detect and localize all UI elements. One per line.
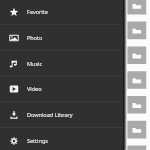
button[interactable]: Download Library: [0, 102, 123, 128]
button[interactable]: Photo: [0, 25, 123, 51]
button[interactable]: Music: [0, 51, 123, 77]
staticText: Settings: [27, 137, 48, 144]
button[interactable]: Video: [0, 76, 123, 102]
staticText: Music: [27, 60, 43, 67]
staticText: Favorite: [27, 8, 48, 15]
staticText: Download Library: [27, 111, 73, 118]
staticText: Video: [27, 85, 42, 92]
button[interactable]: Favorite: [0, 0, 123, 25]
staticText: Photo: [27, 34, 43, 41]
button[interactable]: Settings: [0, 128, 123, 150]
